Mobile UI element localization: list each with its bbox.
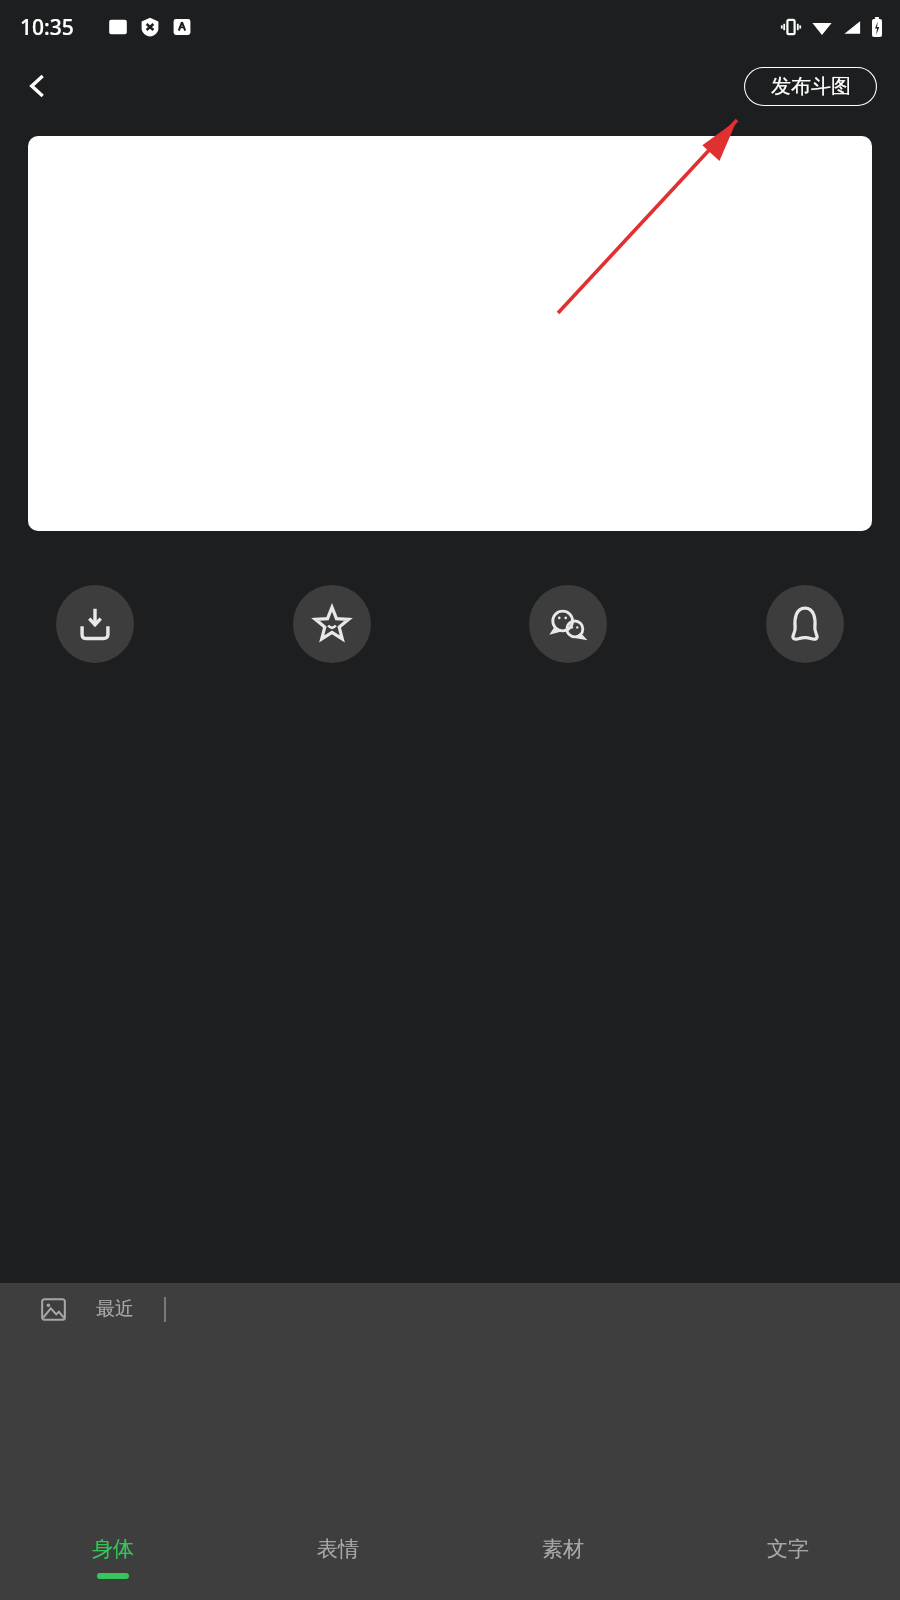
staticText: 素材 [542, 1536, 584, 1562]
button[interactable]: 发布斗图 [744, 67, 877, 106]
staticText: 发布斗图 [771, 74, 851, 99]
button[interactable]: 表情 [225, 1508, 450, 1573]
button[interactable]: 文字 [675, 1508, 900, 1573]
button[interactable]: Gallery [36, 1292, 70, 1326]
button[interactable]: Share to WeChat [529, 585, 607, 663]
staticText: 文字 [767, 1536, 809, 1562]
staticText: 表情 [317, 1536, 359, 1562]
staticText: 身体 [92, 1536, 134, 1562]
button[interactable]: Back [12, 60, 64, 112]
button[interactable]: Favorite [293, 585, 371, 663]
staticText: 10:35 [20, 13, 74, 42]
button[interactable]: Download [56, 585, 134, 663]
button[interactable] [28, 136, 872, 531]
button[interactable]: 素材 [450, 1508, 675, 1573]
staticText: 最近 [96, 1297, 134, 1321]
button[interactable]: 最近 [96, 1297, 134, 1321]
button[interactable]: Share to QQ [766, 585, 844, 663]
button[interactable]: 身体 [0, 1508, 225, 1579]
